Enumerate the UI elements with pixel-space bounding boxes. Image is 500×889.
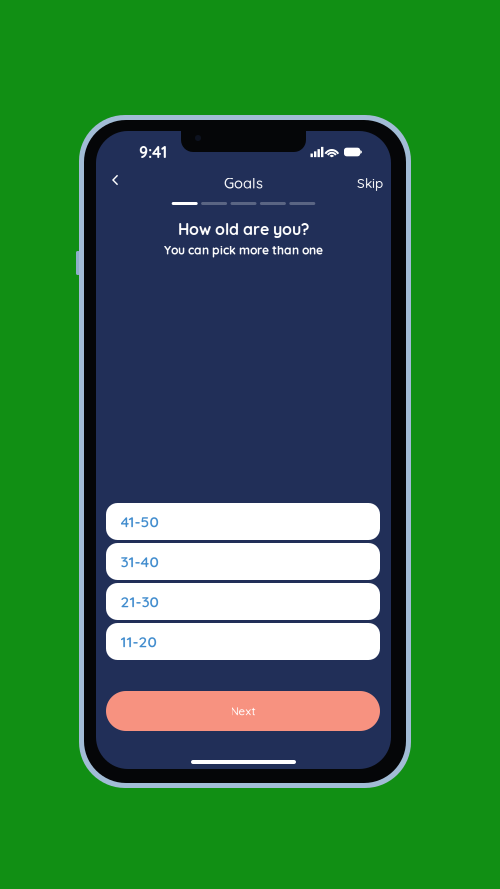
button[interactable]: 11-20 [106,623,380,660]
button[interactable]: 31-40 [106,543,380,580]
staticText: 41-50 [120,512,158,531]
staticText: 31-40 [120,552,158,571]
staticText: How old are you? [178,219,309,239]
staticText: Skip [357,175,383,191]
staticText: You can pick more than one [164,242,323,257]
button[interactable]: Skip [350,173,390,193]
staticText: Goals [224,174,263,192]
button[interactable]: 41-50 [106,503,380,540]
button[interactable]: 21-30 [106,583,380,620]
staticText: 9:41 [139,142,167,162]
staticText: Next [230,704,255,718]
button[interactable]: Next [106,691,380,731]
staticText: 11-20 [120,632,156,651]
staticText: 21-30 [120,592,158,611]
button[interactable]: Back [102,167,128,193]
